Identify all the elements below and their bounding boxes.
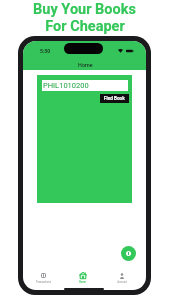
button[interactable]: Find Book: [100, 94, 129, 103]
button[interactable]: Account: [102, 272, 141, 285]
staticText: Account: [117, 281, 127, 284]
button[interactable]: Add book: [121, 246, 136, 261]
staticText: Buy Your Books: [33, 1, 136, 18]
staticText: Home: [79, 281, 86, 284]
staticText: Find Book: [104, 96, 125, 101]
button[interactable]: Home: [63, 272, 102, 285]
staticText: For Cheaper: [45, 18, 125, 35]
button[interactable]: PHIL1010200: [42, 80, 128, 91]
staticText: Home: [78, 62, 93, 68]
staticText: PHIL1010200: [43, 81, 89, 90]
staticText: 5:30: [40, 48, 51, 54]
button[interactable]: Transactions: [24, 272, 63, 285]
staticText: Transactions: [36, 281, 51, 284]
